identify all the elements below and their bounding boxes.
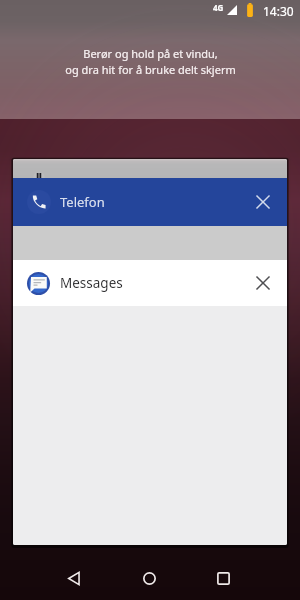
staticText: 14:30 [263,3,294,19]
button[interactable]: Back [54,558,94,598]
staticText: Berør og hold på et vindu, [83,46,218,61]
button[interactable]: Telefon [13,178,287,226]
button[interactable]: Messages [13,260,287,306]
staticText: og dra hit for å bruke delt skjerm [65,62,236,77]
staticText: Telefon [60,193,105,211]
button[interactable]: Recent apps [203,558,243,598]
button[interactable]: Home [129,558,169,598]
staticText: 4G [213,2,224,13]
staticText: Messages [60,274,123,292]
button[interactable]: Close Messages [250,270,276,296]
button[interactable]: Close Telefon [250,189,276,215]
